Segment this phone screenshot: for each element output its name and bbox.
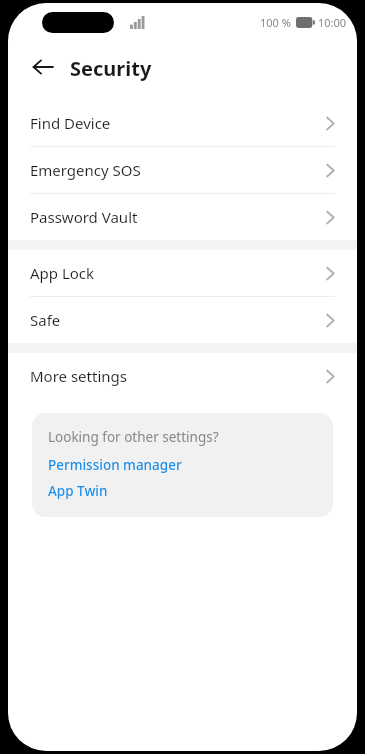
button[interactable]: Permission manager <box>48 456 182 474</box>
staticText: App Lock <box>30 263 326 283</box>
staticText: Find Device <box>30 113 326 133</box>
button[interactable]: App Twin <box>48 482 108 500</box>
button[interactable]: Back <box>22 46 64 88</box>
staticText: Permission manager <box>48 456 182 474</box>
button[interactable]: Safe <box>8 297 357 343</box>
button[interactable]: App Lock <box>8 250 357 296</box>
staticText: App Twin <box>48 482 108 500</box>
staticText: Password Vault <box>30 207 326 227</box>
staticText: Security <box>70 55 152 82</box>
button[interactable]: Emergency SOS <box>8 147 357 193</box>
staticText: 10:00 <box>318 15 347 30</box>
button[interactable]: More settings <box>8 353 357 399</box>
staticText: More settings <box>30 366 326 386</box>
button[interactable]: Password Vault <box>8 194 357 240</box>
staticText: Emergency SOS <box>30 160 326 180</box>
staticText: Looking for other settings? <box>48 428 219 446</box>
staticText: Safe <box>30 310 326 330</box>
staticText: 100 % <box>260 15 291 30</box>
button[interactable]: Find Device <box>8 100 357 146</box>
